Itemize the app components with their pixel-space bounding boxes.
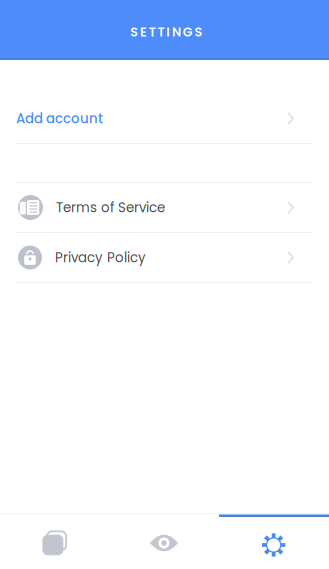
button[interactable]: Terms of Service [0,183,329,232]
staticText: Add account [16,109,103,128]
button[interactable]: Privacy Policy [0,233,329,282]
staticText: Privacy Policy [55,248,146,267]
staticText: Terms of Service [56,198,165,217]
button[interactable]: Library [0,513,110,569]
button[interactable]: Preview [110,513,219,569]
button[interactable]: Settings [219,513,329,569]
button[interactable]: Add account [0,94,329,143]
staticText: SETTINGS [130,23,202,41]
